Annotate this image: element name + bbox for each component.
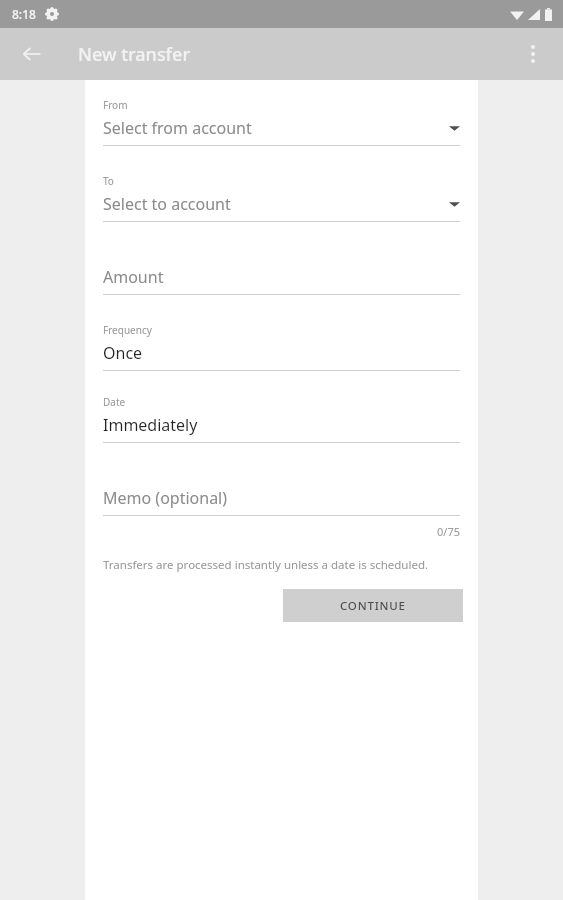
staticText: 8:18 [12,6,36,22]
staticText: To [103,174,114,188]
button[interactable]: CONTINUE [283,589,463,622]
staticText: From [103,98,128,112]
staticText: Date [103,395,126,409]
staticText: Select from account [103,117,449,139]
button[interactable]: More options [511,32,555,76]
staticText: CONTINUE [340,598,406,614]
button[interactable]: Amount [103,266,460,295]
button[interactable]: Back [10,32,54,76]
staticText: Once [103,342,460,364]
staticText: Memo (optional) [103,487,460,509]
staticText: Amount [103,266,460,288]
staticText: New transfer [78,42,190,67]
button[interactable]: Date [103,395,460,443]
staticText: Select to account [103,193,449,215]
staticText: Transfers are processed instantly unless… [103,557,429,573]
staticText: 0/75 [437,524,460,539]
button[interactable]: Memo (optional) [103,487,460,516]
staticText: Immediately [103,414,460,436]
button[interactable]: From [103,98,460,146]
staticText: Frequency [103,323,152,337]
button[interactable]: To [103,174,460,222]
button[interactable]: Frequency [103,323,460,371]
